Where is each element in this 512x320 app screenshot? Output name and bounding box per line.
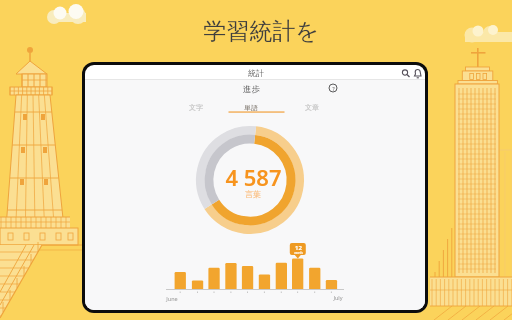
staticText: 文章 [305, 103, 319, 112]
staticText: words [294, 251, 303, 255]
staticText: 学習統計を [203, 17, 319, 46]
staticText: 文字 [189, 103, 203, 112]
staticText: 進歩 [243, 84, 260, 95]
staticText: June [166, 295, 178, 302]
staticText: ? [332, 85, 335, 92]
button[interactable] [412, 66, 425, 79]
button[interactable] [399, 66, 412, 79]
staticText: 12 [295, 244, 302, 252]
button[interactable]: ? [327, 82, 339, 94]
staticText: 言葉 [245, 189, 261, 199]
staticText: 4 587 [225, 162, 282, 192]
button[interactable]: 文章 [284, 100, 340, 114]
button[interactable]: 文字 [168, 100, 224, 114]
staticText: 統計 [248, 68, 264, 78]
button[interactable]: 単語 [223, 100, 279, 114]
staticText: 単語 [244, 103, 258, 112]
staticText: July [333, 294, 343, 301]
